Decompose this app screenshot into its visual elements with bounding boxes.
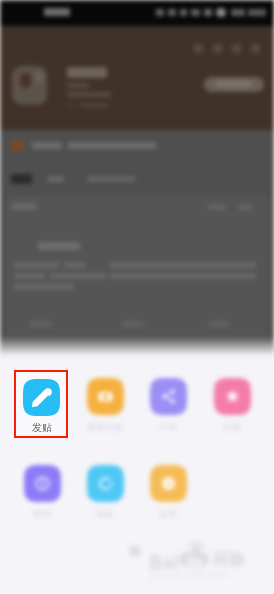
staticText: du [186,552,203,567]
staticText: Bai [149,549,179,575]
button[interactable]: 发贴 [15,369,69,440]
button[interactable]: 设置 [141,456,195,527]
staticText: 经验 [213,550,245,570]
button[interactable]: 发贴 [16,372,66,436]
button[interactable]: 刷新 [78,456,132,527]
button[interactable]: 收藏 [205,369,259,440]
button[interactable]: 举报 [15,456,69,527]
staticText: 发贴 [33,421,51,432]
button[interactable]: 截屏反馈 [78,369,132,440]
button[interactable]: 分享 [141,369,195,440]
staticText: 发贴 [32,421,52,434]
